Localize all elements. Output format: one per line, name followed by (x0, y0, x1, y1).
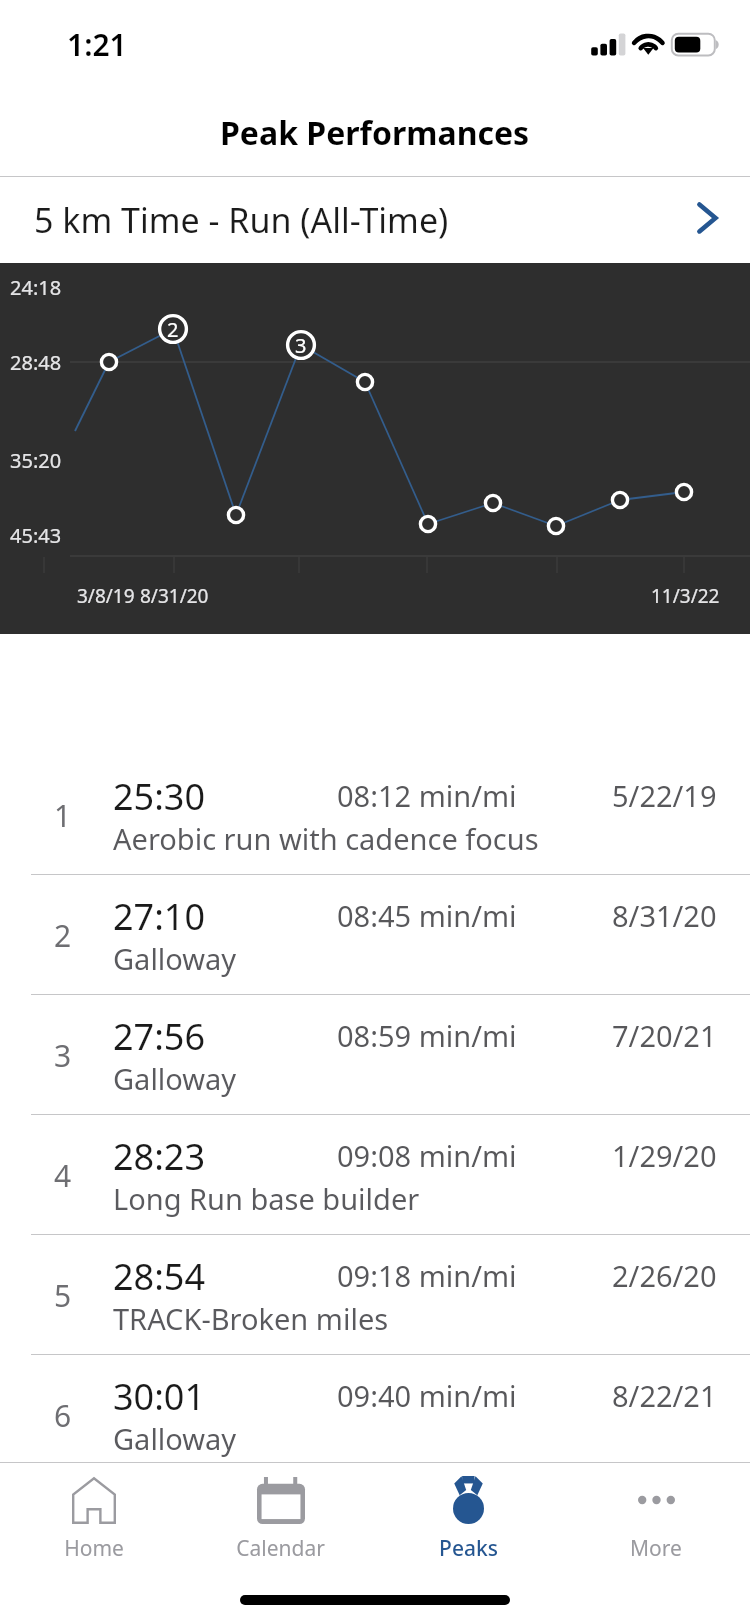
staticText: 3/8/19 (77, 583, 135, 609)
staticText: Peaks (439, 1534, 498, 1563)
staticText: 3 (54, 1035, 72, 1076)
button[interactable]: 3 (0, 995, 750, 1114)
staticText: Peak Performances (220, 111, 530, 155)
staticText: 09:18 min/mi (337, 1256, 517, 1295)
staticText: 6 (54, 1395, 72, 1436)
button[interactable]: More (562, 1463, 750, 1563)
staticText: 4 (54, 1155, 72, 1196)
button[interactable]: Peaks (374, 1463, 562, 1563)
staticText: Galloway (113, 1419, 237, 1458)
staticText: 08:45 min/mi (337, 896, 517, 935)
staticText: More (630, 1534, 682, 1563)
staticText: 5 km Time - Run (All-Time) (34, 197, 449, 243)
staticText: 8/22/21 (612, 1376, 717, 1415)
staticText: 2 (54, 915, 72, 956)
button[interactable]: 1 (0, 755, 750, 874)
staticText: Long Run base builder (113, 1179, 420, 1218)
staticText: 5 (54, 1275, 72, 1316)
staticText: 8/31/20 (612, 896, 717, 935)
staticText: Galloway (113, 1059, 237, 1098)
staticText: 28:48 (10, 349, 62, 376)
staticText: 1 (54, 795, 72, 836)
button[interactable]: Calendar (187, 1463, 374, 1563)
staticText: 24:18 (10, 274, 62, 301)
staticText: Aerobic run with cadence focus (113, 819, 539, 858)
button[interactable]: Home (0, 1463, 187, 1563)
staticText: 5/22/19 (612, 776, 717, 815)
staticText: 2/26/20 (612, 1256, 717, 1295)
staticText: 27:10 (113, 892, 206, 941)
staticText: 30:01 (113, 1372, 206, 1421)
staticText: 27:56 (113, 1012, 206, 1061)
staticText: 7/20/21 (612, 1016, 717, 1055)
staticText: 2 (167, 316, 179, 343)
staticText: TRACK-Broken miles (113, 1299, 389, 1338)
staticText: Galloway (113, 939, 237, 978)
staticText: 45:43 (10, 522, 62, 549)
staticText: Home (64, 1534, 124, 1563)
staticText: Calendar (236, 1534, 325, 1563)
button[interactable]: 2 (0, 875, 750, 994)
staticText: 28:23 (113, 1132, 206, 1181)
staticText: 3 (295, 332, 307, 359)
staticText: 09:40 min/mi (337, 1376, 517, 1415)
staticText: 25:30 (113, 772, 206, 821)
staticText: 1:21 (67, 24, 127, 65)
staticText: 08:12 min/mi (337, 776, 517, 815)
staticText: 8/31/20 (140, 583, 209, 609)
staticText: 11/3/22 (651, 583, 720, 609)
button[interactable]: 5 (0, 1235, 750, 1354)
staticText: 09:08 min/mi (337, 1136, 517, 1175)
button[interactable]: 6 (0, 1355, 750, 1474)
staticText: 08:59 min/mi (337, 1016, 517, 1055)
button[interactable]: 5 km Time - Run (All-Time) (0, 177, 750, 263)
staticText: 1/29/20 (612, 1136, 717, 1175)
button[interactable]: 4 (0, 1115, 750, 1234)
staticText: 35:20 (10, 447, 62, 474)
staticText: 28:54 (113, 1252, 206, 1301)
